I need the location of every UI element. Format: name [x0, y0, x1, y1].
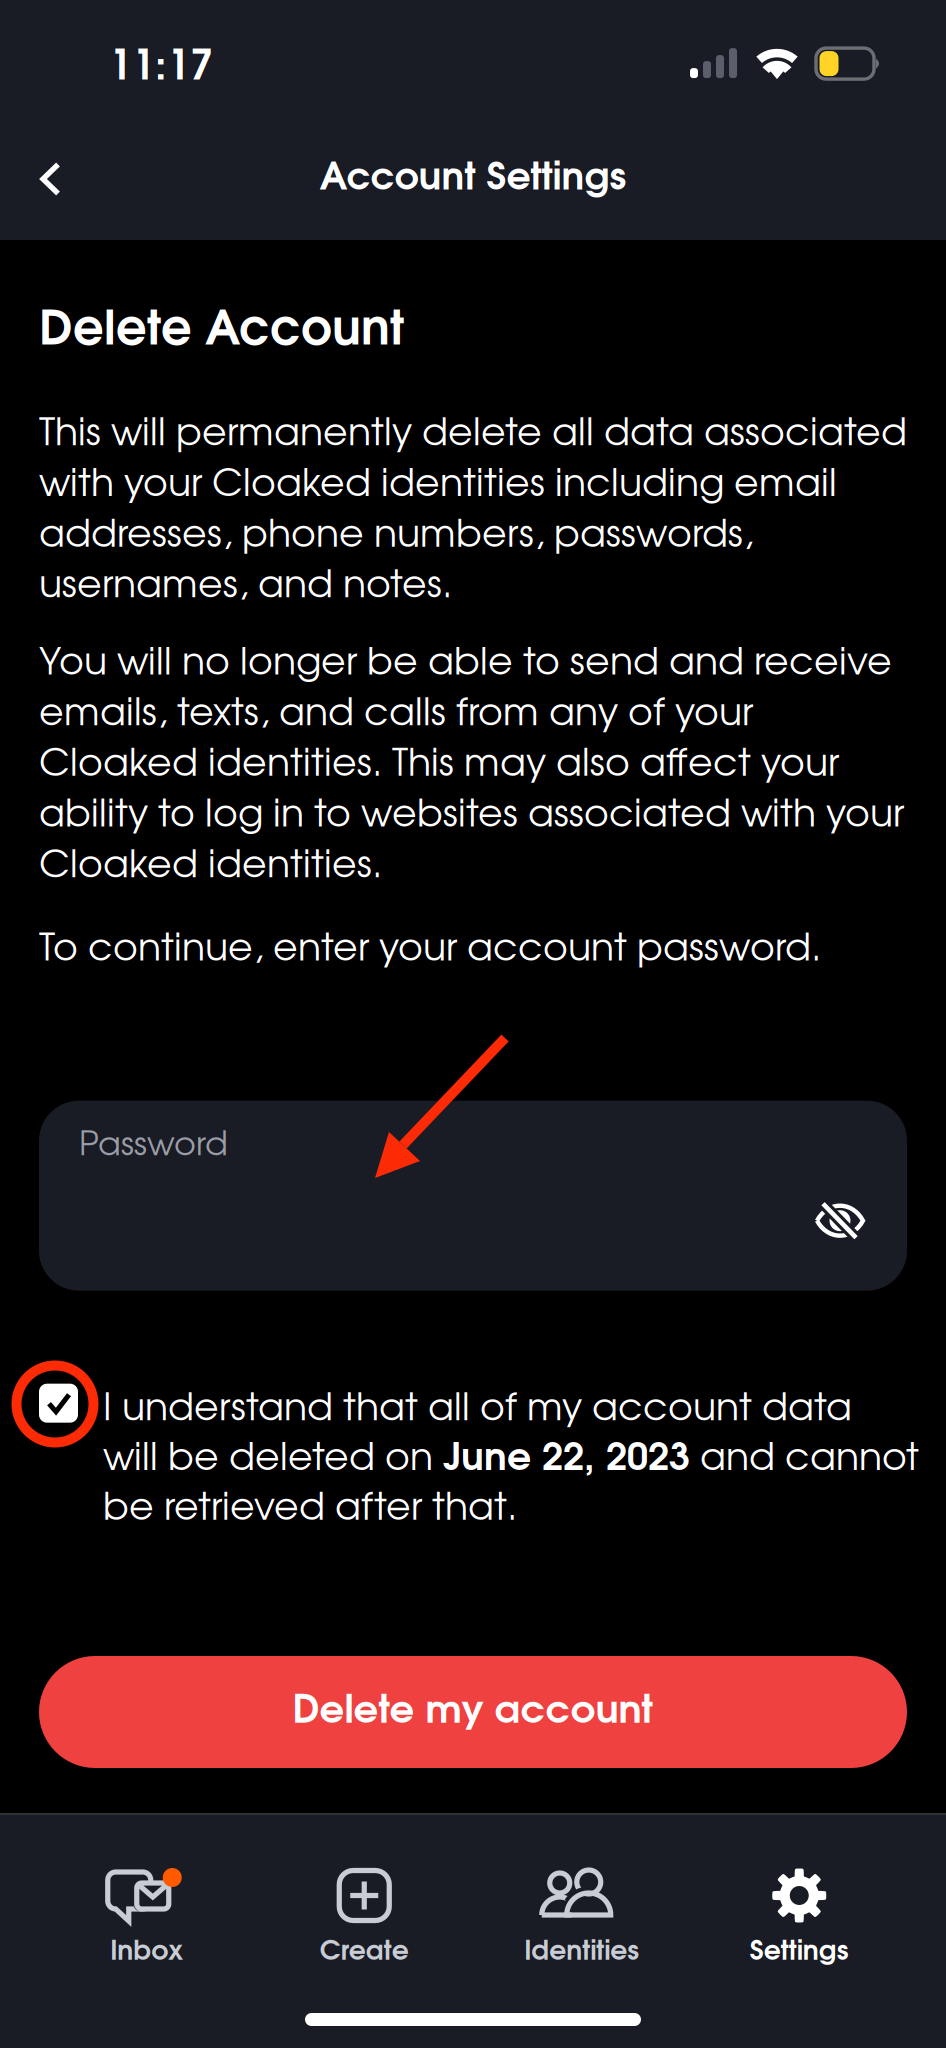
staticText: Inbox — [110, 1940, 183, 1965]
staticText: Account Settings — [319, 161, 626, 196]
staticText: You will no longer be able to send and r… — [39, 647, 904, 884]
staticText: This will permanently delete all data as… — [39, 417, 907, 605]
button[interactable]: Inbox — [38, 1813, 255, 1981]
staticText: Identities — [524, 1940, 639, 1965]
staticText: Password — [79, 1131, 228, 1162]
staticText: 11:17 — [109, 49, 213, 87]
button[interactable]: Delete my account — [39, 1656, 907, 1768]
button[interactable]: Identities — [473, 1813, 690, 1981]
button[interactable]: Show password — [815, 1203, 866, 1239]
button[interactable]: Settings — [690, 1813, 908, 1981]
staticText: Settings — [750, 1940, 849, 1965]
staticText: I understand that all of my account data… — [103, 1393, 919, 1527]
staticText: Create — [320, 1940, 409, 1965]
staticText: Delete Account — [39, 309, 404, 353]
staticText: To continue, enter your account password… — [39, 932, 821, 968]
staticText: Delete my account — [292, 1694, 653, 1730]
button[interactable]: Back — [0, 108, 99, 240]
button[interactable]: I understand — [39, 1393, 78, 1432]
button[interactable]: Create — [255, 1813, 473, 1981]
